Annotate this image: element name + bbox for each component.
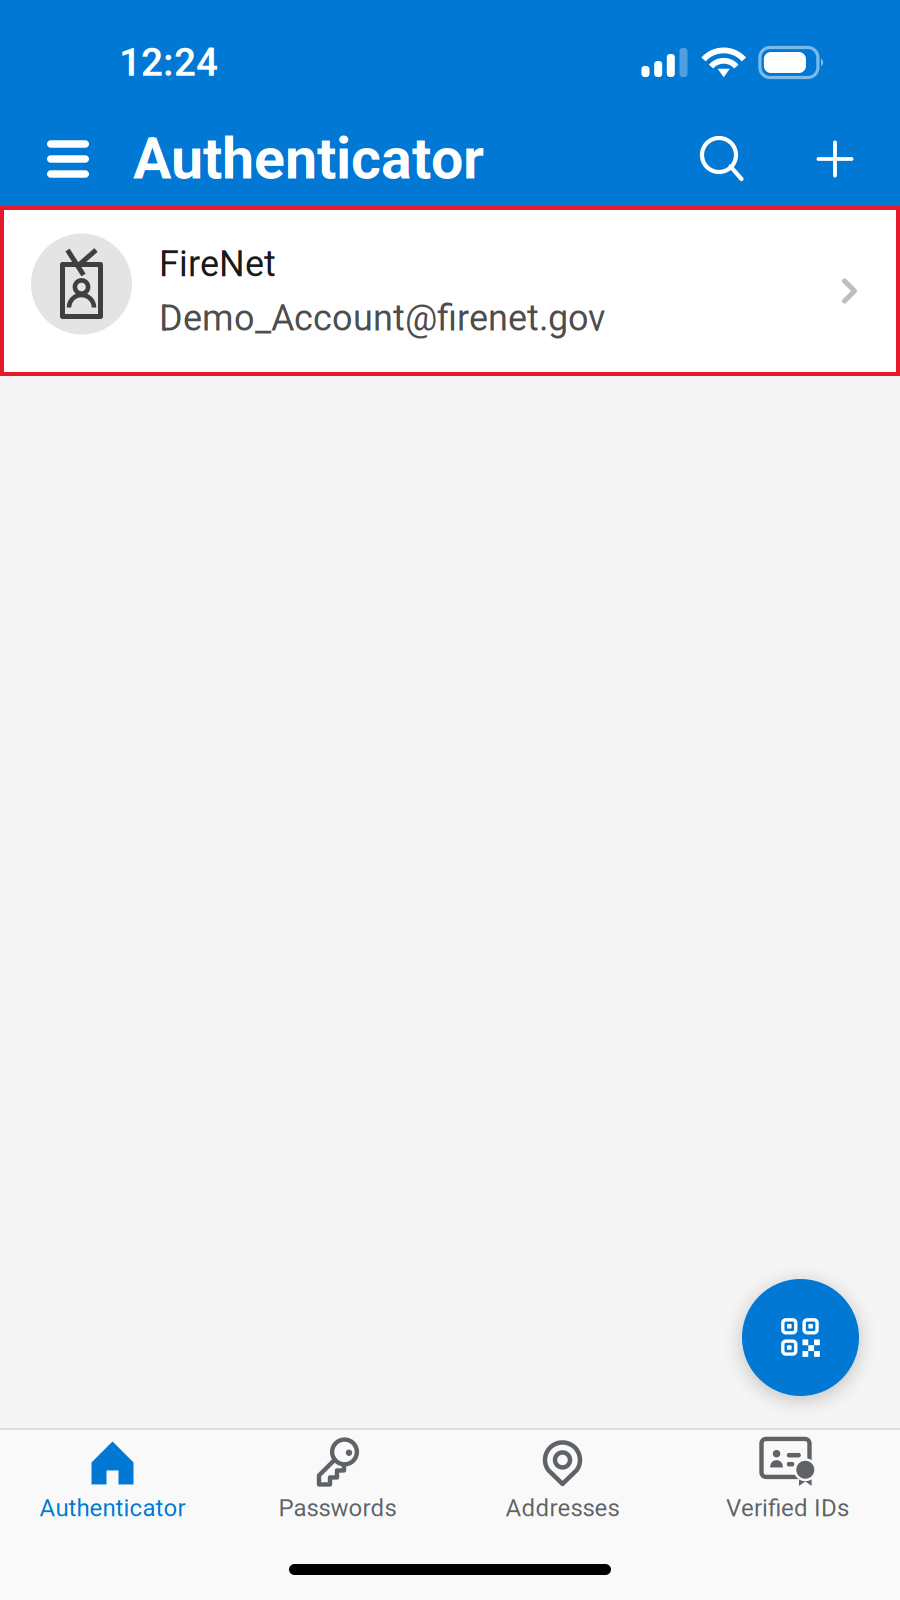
button[interactable]: Scan QR code	[742, 1279, 859, 1396]
staticText: Authenticator	[133, 125, 484, 193]
button[interactable]: Menu	[31, 124, 105, 194]
staticText: Demo_Account@firenet.gov	[159, 297, 605, 339]
button[interactable]: Addresses	[450, 1430, 675, 1536]
button[interactable]: Verified IDs	[675, 1430, 900, 1536]
staticText: 12:24	[119, 40, 218, 85]
button[interactable]: FireNet	[0, 206, 900, 376]
staticText: Addresses	[505, 1494, 619, 1522]
staticText: Verified IDs	[726, 1494, 849, 1522]
button[interactable]: Add account	[800, 124, 870, 194]
staticText: Authenticator	[39, 1494, 185, 1522]
staticText: Passwords	[278, 1494, 396, 1522]
staticText: FireNet	[159, 243, 276, 285]
button[interactable]: Search	[688, 124, 756, 194]
button[interactable]: Passwords	[225, 1430, 450, 1536]
button[interactable]: Authenticator	[0, 1430, 225, 1536]
